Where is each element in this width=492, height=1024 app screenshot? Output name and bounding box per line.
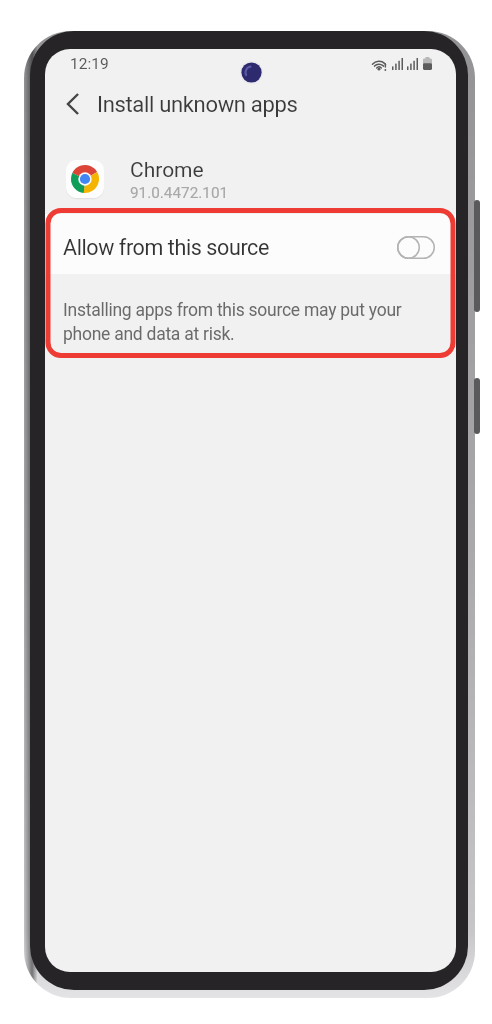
staticText: Chrome (130, 158, 204, 183)
button[interactable]: Allow from this source toggle (397, 236, 435, 259)
button[interactable]: Back (56, 87, 90, 121)
staticText: Installing apps from this source may put… (63, 297, 425, 345)
staticText: Allow from this source (63, 235, 269, 260)
button[interactable] (45, 214, 456, 274)
staticText: 12:19 (70, 55, 109, 73)
staticText: 91.0.4472.101 (130, 184, 229, 202)
staticText: Install unknown apps (97, 92, 298, 118)
button[interactable] (45, 145, 456, 207)
